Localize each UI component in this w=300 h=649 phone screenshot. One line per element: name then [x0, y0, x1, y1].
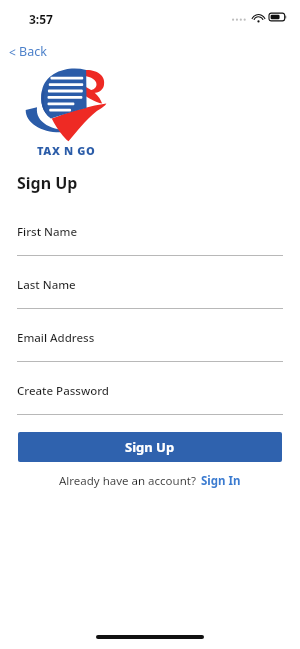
staticText: First Name — [17, 224, 78, 240]
staticText: Sign Up — [17, 172, 78, 194]
staticText: 3:57 — [29, 11, 53, 27]
staticText: Email Address — [17, 330, 95, 346]
staticText: Back — [19, 43, 47, 60]
staticText: Create Password — [17, 383, 109, 399]
staticText: Sign In — [201, 473, 241, 489]
staticText: Sign Up — [125, 438, 175, 456]
staticText: Already have an account? — [59, 473, 196, 489]
button[interactable]: Email Address — [17, 330, 95, 346]
button[interactable]: Sign Up — [18, 432, 282, 462]
button[interactable]: < — [6, 41, 50, 62]
other: Tax N Go logo — [24, 62, 108, 142]
button[interactable]: Sign In — [200, 472, 242, 490]
button[interactable]: Last Name — [17, 277, 76, 293]
staticText: Last Name — [17, 277, 76, 293]
button[interactable]: Create Password — [17, 383, 109, 399]
button[interactable]: First Name — [17, 224, 78, 240]
staticText: TAX N GO — [37, 143, 96, 158]
staticText: < — [9, 44, 16, 60]
